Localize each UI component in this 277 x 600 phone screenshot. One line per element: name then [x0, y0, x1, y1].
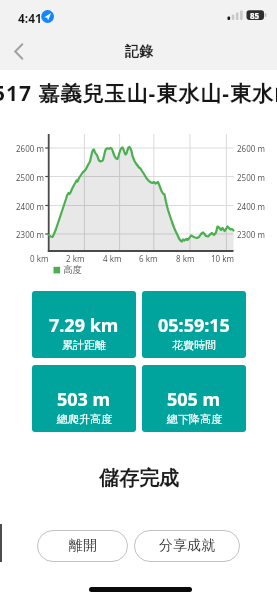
staticText: 花費時間: [172, 338, 216, 352]
staticText: 高度: [63, 264, 82, 276]
button[interactable]: [4, 38, 36, 66]
staticText: 4:41: [18, 10, 42, 26]
staticText: 分享成就: [159, 537, 215, 555]
staticText: 10 km: [211, 253, 234, 264]
button[interactable]: 503 m: [32, 365, 136, 432]
button[interactable]: 分享成就: [134, 530, 240, 562]
staticText: 2400 m: [237, 201, 265, 212]
staticText: 儲存完成: [99, 466, 179, 491]
button[interactable]: 505 m: [142, 365, 246, 432]
staticText: 2600 m: [237, 143, 265, 154]
staticText: 記錄: [125, 43, 153, 61]
staticText: 8 km: [176, 253, 195, 264]
staticText: 2600 m: [16, 143, 44, 154]
staticText: 0 km: [30, 253, 49, 264]
staticText: 2500 m: [16, 172, 44, 183]
staticText: 總爬升高度: [57, 412, 112, 426]
staticText: 505 m: [167, 387, 221, 412]
staticText: 總下降高度: [167, 412, 222, 426]
staticText: 累計距離: [62, 338, 106, 352]
button[interactable]: 05:59:15: [142, 291, 246, 358]
staticText: 2500 m: [237, 172, 265, 183]
button[interactable]: 7.29 km: [32, 291, 136, 358]
staticText: 85: [250, 10, 260, 21]
staticText: 2300 m: [16, 229, 44, 240]
staticText: 503 m: [57, 387, 111, 412]
staticText: 2400 m: [16, 201, 44, 212]
staticText: 2300 m: [237, 229, 265, 240]
staticText: 4 km: [103, 253, 122, 264]
staticText: 7.29 km: [49, 313, 119, 338]
staticText: 05:59:15: [158, 313, 230, 338]
staticText: 離開: [69, 537, 97, 555]
staticText: 2 km: [66, 253, 85, 264]
staticText: 517 嘉義兒玉山-東水山-東水山縱走: [0, 79, 277, 108]
staticText: 6 km: [139, 253, 158, 264]
button[interactable]: 離開: [37, 530, 128, 562]
